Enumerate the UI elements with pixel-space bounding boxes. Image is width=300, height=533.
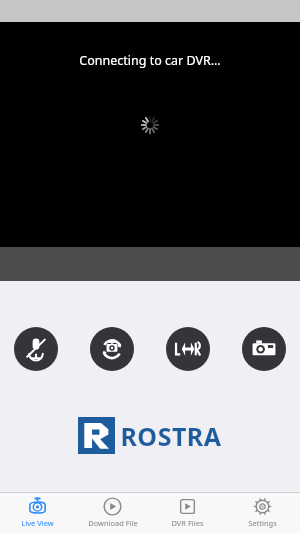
button[interactable]: Swap left right bbox=[166, 327, 210, 371]
button[interactable]: Settings bbox=[225, 492, 300, 533]
button[interactable]: Take photo bbox=[242, 327, 286, 371]
staticText: DVR Files bbox=[171, 518, 204, 528]
button[interactable]: Mute microphone bbox=[14, 327, 58, 371]
button[interactable]: Live View bbox=[0, 492, 75, 533]
staticText: Connecting to car DVR... bbox=[79, 52, 221, 69]
button[interactable]: DVR Files bbox=[150, 492, 225, 533]
staticText: ROSTRA bbox=[120, 419, 222, 453]
button[interactable]: Download File bbox=[75, 492, 150, 533]
button[interactable]: Switch camera bbox=[90, 327, 134, 371]
staticText: Download File bbox=[88, 518, 138, 528]
staticText: Settings bbox=[248, 518, 277, 528]
staticText: Live View bbox=[21, 518, 54, 528]
